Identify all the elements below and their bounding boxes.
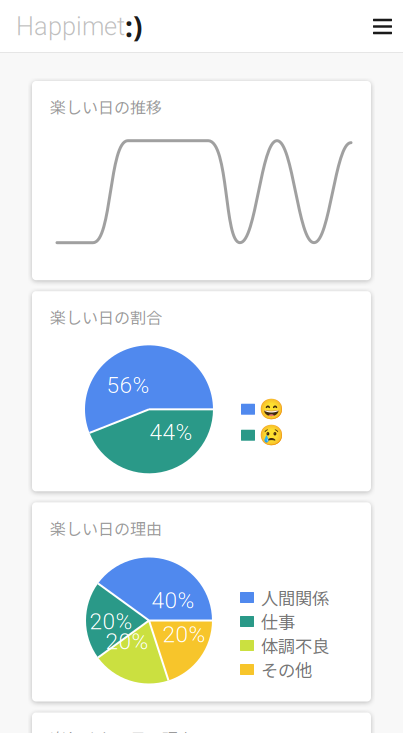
staticText: 😢 <box>259 424 284 447</box>
staticText: 20% <box>162 621 205 648</box>
staticText: 20% <box>89 608 132 635</box>
staticText: 楽しい日の理由 <box>50 516 162 539</box>
staticText: 😄 <box>259 398 284 421</box>
staticText: :) <box>125 8 142 45</box>
staticText: 20% <box>105 628 148 655</box>
staticText: 人間関係 <box>261 585 329 610</box>
staticText: Happimet <box>16 12 125 41</box>
staticText: 楽しい日の推移 <box>50 95 162 118</box>
staticText: 44% <box>149 419 192 446</box>
staticText: 楽しくない日の理由 <box>50 726 194 733</box>
staticText: 体調不良 <box>261 633 329 658</box>
staticText: 40% <box>151 587 194 614</box>
button[interactable]: Menu <box>359 3 403 50</box>
button[interactable]: Happimet <box>16 8 142 45</box>
staticText: 56% <box>106 372 149 399</box>
staticText: その他 <box>261 657 312 682</box>
staticText: 楽しい日の割合 <box>50 305 162 328</box>
staticText: 仕事 <box>261 609 295 634</box>
